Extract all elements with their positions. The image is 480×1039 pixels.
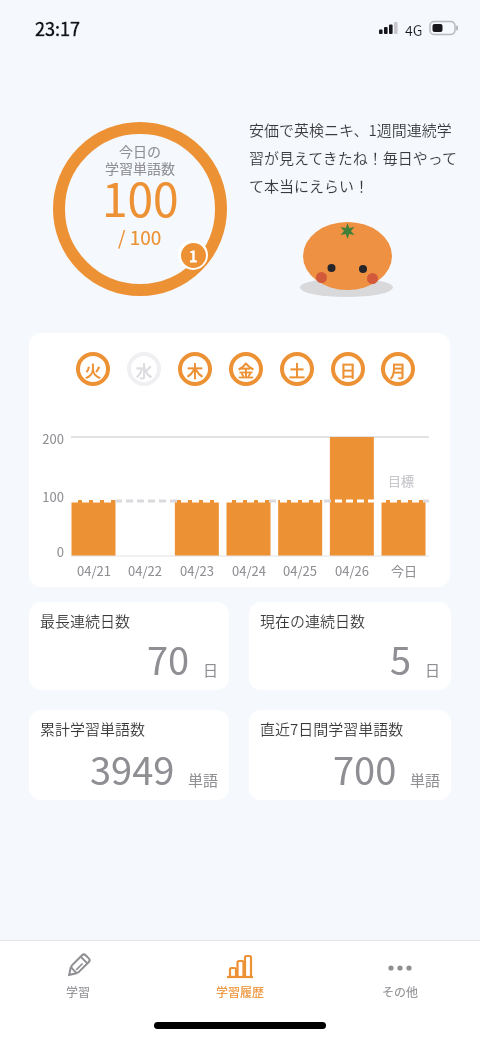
staticText: 100 <box>102 164 179 231</box>
staticText: 現在の連続日数 <box>260 610 366 632</box>
staticText: 04/26 <box>335 561 369 580</box>
staticText: 今日の <box>119 141 161 161</box>
staticText: 日 <box>340 358 357 381</box>
button[interactable]: 火 <box>76 352 110 386</box>
button[interactable]: 月 <box>381 352 415 386</box>
staticText: 単語 <box>410 769 441 791</box>
staticText: 日 <box>203 659 219 681</box>
staticText: 安価で英検ニキ、1週間連続学 習が見えてきたね！毎日やって て本当にえらい！ <box>249 119 458 197</box>
button[interactable]: 現在の連続日数 <box>249 602 451 690</box>
staticText: 学習 <box>66 983 91 1000</box>
staticText: 学習履歴 <box>216 983 265 1000</box>
staticText: 1 <box>189 245 198 267</box>
button[interactable]: 金 <box>229 352 263 386</box>
button[interactable]: 木 <box>178 352 212 386</box>
staticText: 23:17 <box>35 15 80 41</box>
staticText: 月 <box>390 358 407 381</box>
staticText: 0 <box>39 542 64 561</box>
staticText: 700 <box>333 741 397 796</box>
staticText: 4G <box>405 20 423 40</box>
staticText: 3949 <box>90 741 175 796</box>
staticText: 100 <box>39 487 64 506</box>
staticText: 04/23 <box>180 561 214 580</box>
staticText: / 100 <box>118 223 162 251</box>
staticText: 04/22 <box>128 561 162 580</box>
staticText: 木 <box>187 358 204 381</box>
staticText: 火 <box>85 358 102 381</box>
staticText: 学習単語数 <box>105 158 175 178</box>
staticText: 200 <box>39 429 64 448</box>
staticText: 単語 <box>188 769 219 791</box>
staticText: 土 <box>289 358 306 381</box>
button[interactable]: 日 <box>331 352 365 386</box>
button[interactable]: 直近7日間学習単語数 <box>249 710 451 800</box>
staticText: 水 <box>136 358 153 381</box>
staticText: 累計学習単語数 <box>40 718 146 740</box>
staticText: 04/25 <box>283 561 317 580</box>
button[interactable]: 水 <box>127 352 161 386</box>
staticText: 04/24 <box>232 561 266 580</box>
button[interactable]: 学習 <box>46 953 110 1011</box>
button[interactable]: 累計学習単語数 <box>29 710 229 800</box>
button[interactable]: 土 <box>280 352 314 386</box>
staticText: 金 <box>238 358 255 381</box>
staticText: 目標 <box>388 471 415 490</box>
staticText: 04/21 <box>77 561 111 580</box>
staticText: 最長連続日数 <box>40 610 131 632</box>
staticText: 70 <box>147 631 190 686</box>
staticText: その他 <box>382 983 419 1000</box>
button[interactable]: 学習履歴 <box>208 953 272 1011</box>
staticText: 今日 <box>391 561 418 580</box>
staticText: 日 <box>425 659 441 681</box>
button[interactable]: 最長連続日数 <box>29 602 229 690</box>
button[interactable]: その他 <box>368 953 432 1011</box>
staticText: 5 <box>390 631 412 686</box>
staticText: 直近7日間学習単語数 <box>260 718 404 740</box>
